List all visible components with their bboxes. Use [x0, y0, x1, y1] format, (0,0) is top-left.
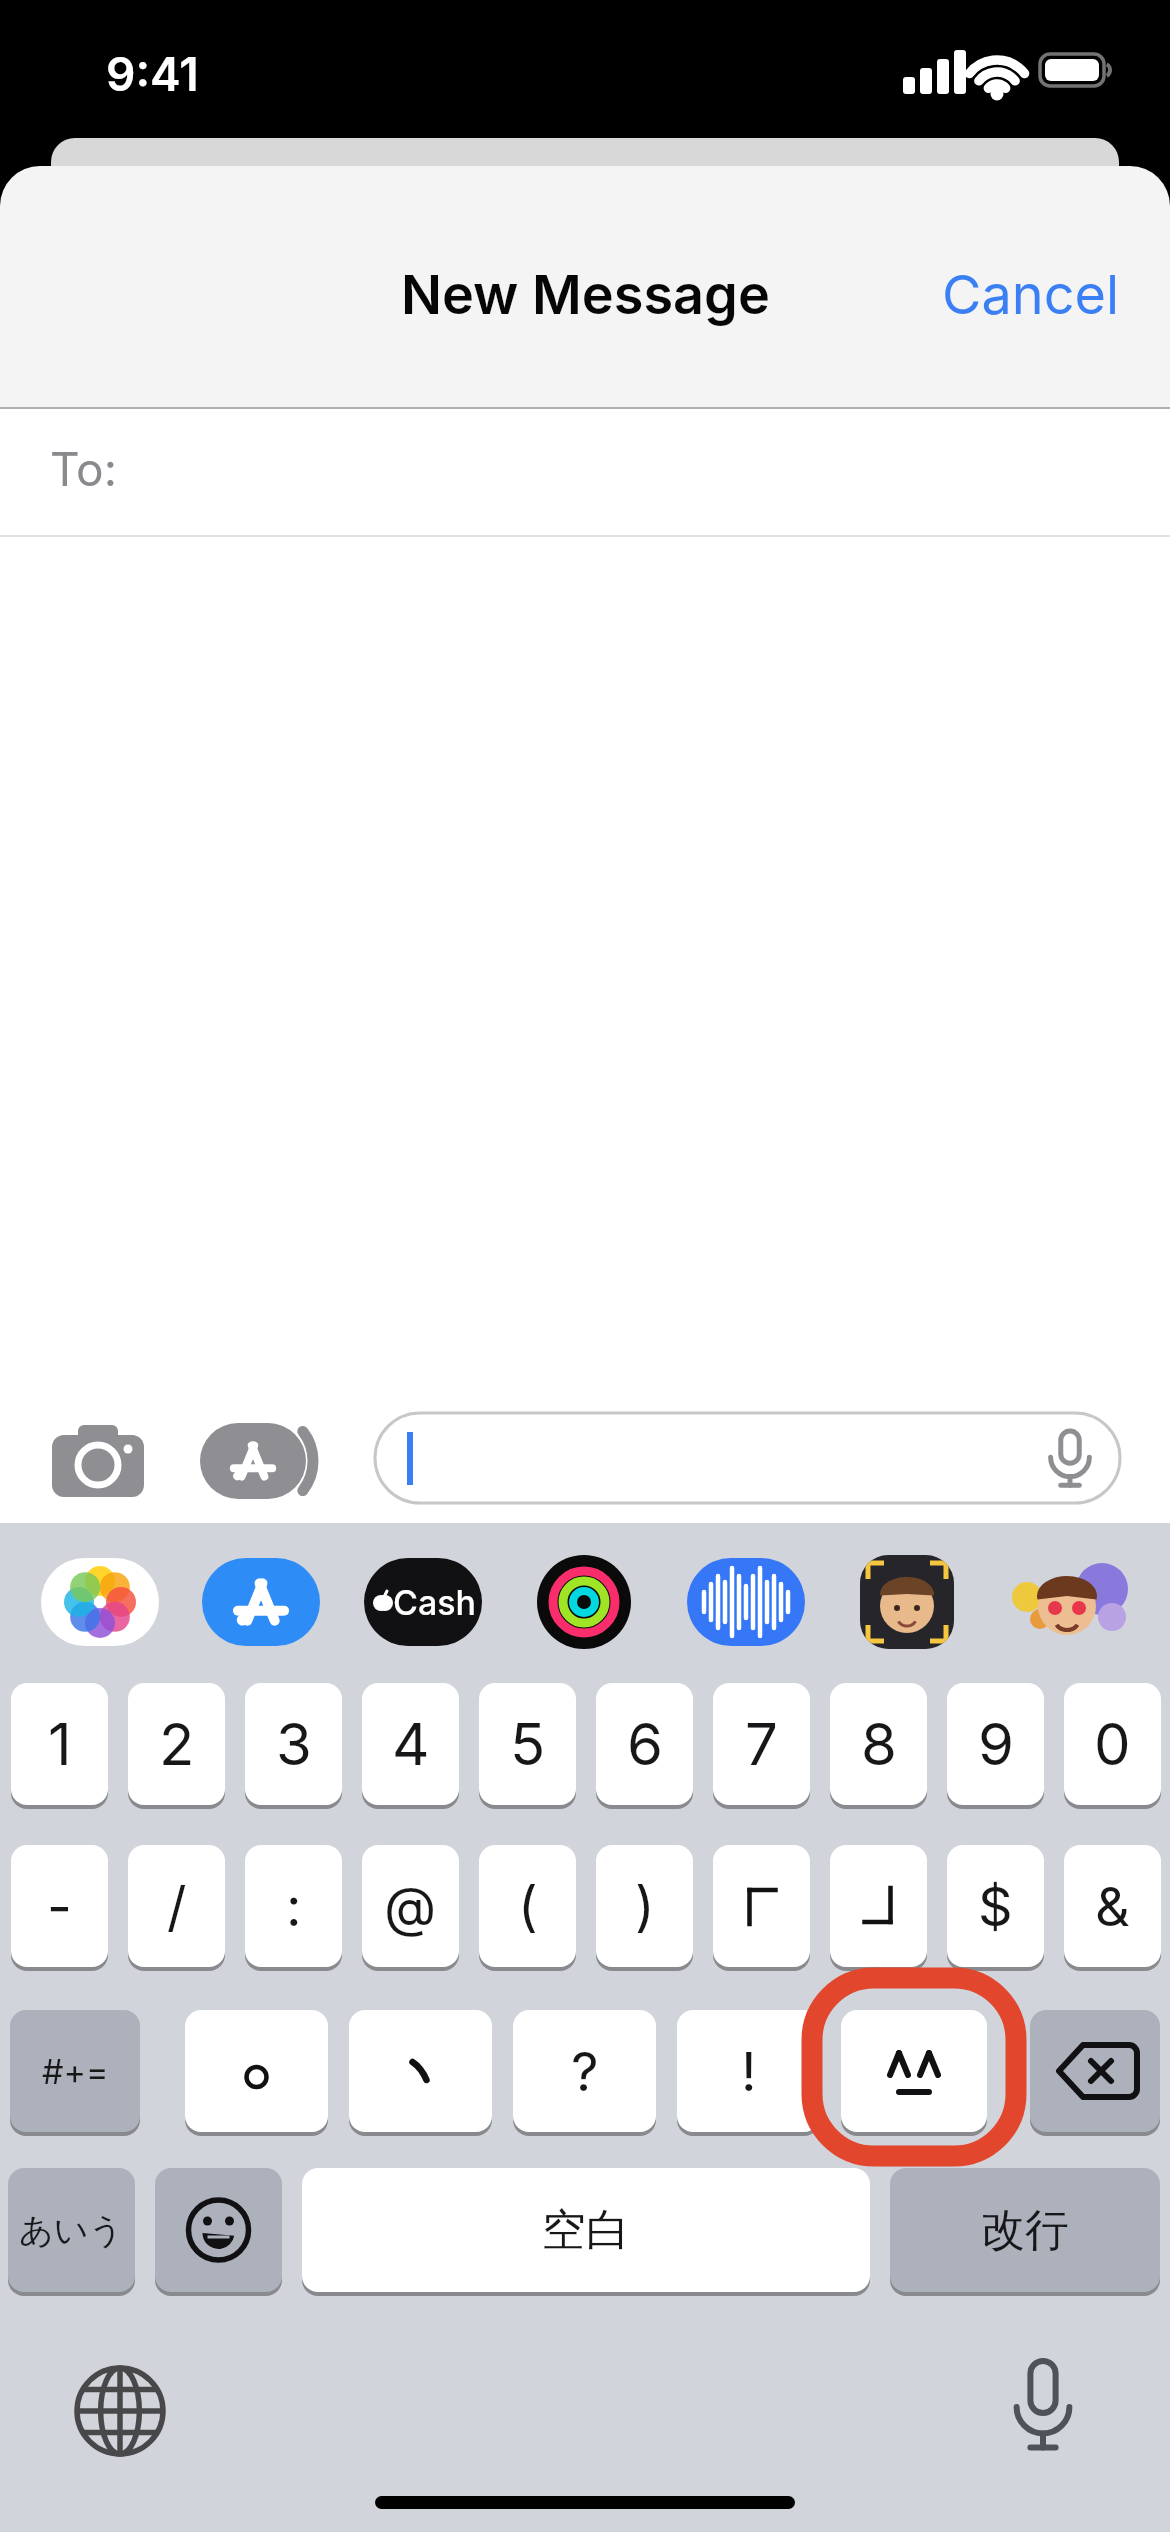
button[interactable]: To:	[0, 409, 1170, 535]
staticText: :	[286, 1874, 302, 1939]
button[interactable]	[155, 2168, 282, 2292]
staticText: New Message	[401, 262, 770, 327]
button[interactable]	[349, 2010, 492, 2132]
button[interactable]	[185, 2010, 328, 2132]
staticText: @	[384, 1874, 437, 1939]
button[interactable]	[830, 1845, 927, 1967]
button[interactable]: 6	[596, 1683, 693, 1805]
button[interactable]	[841, 2010, 987, 2132]
staticText: /	[167, 1874, 187, 1939]
staticText: Cancel	[942, 262, 1120, 327]
button[interactable]	[52, 1421, 148, 1501]
button[interactable]	[860, 1555, 954, 1649]
staticText: #+=	[42, 2051, 109, 2092]
button[interactable]	[1030, 2010, 1160, 2132]
staticText: 7	[745, 1709, 778, 1779]
staticText: Cash	[393, 1582, 477, 1623]
button[interactable]: あいう	[8, 2168, 135, 2292]
staticText: 改行	[981, 2203, 1069, 2258]
button[interactable]: #+=	[10, 2010, 140, 2132]
button[interactable]	[202, 1558, 320, 1646]
staticText: 8	[861, 1709, 897, 1779]
staticText: $	[978, 1874, 1013, 1939]
staticText: あいう	[19, 2209, 124, 2252]
button[interactable]: )	[596, 1845, 693, 1967]
button[interactable]: &	[1064, 1845, 1161, 1967]
staticText: !	[741, 2039, 757, 2104]
staticText: (	[518, 1874, 538, 1939]
button[interactable]: :	[245, 1845, 342, 1967]
staticText: 0	[1094, 1709, 1131, 1779]
staticText: -	[47, 1874, 72, 1939]
button[interactable]: @	[362, 1845, 459, 1967]
staticText: 4	[392, 1709, 430, 1779]
staticText: 9:41	[106, 46, 199, 102]
button[interactable]: Cash	[364, 1558, 482, 1646]
staticText: 空白	[542, 2203, 630, 2258]
button[interactable]	[375, 1413, 1120, 1503]
button[interactable]: 1	[11, 1683, 108, 1805]
staticText: )	[635, 1874, 655, 1939]
button[interactable]	[200, 1421, 340, 1501]
button[interactable]: 8	[830, 1683, 927, 1805]
button[interactable]: 0	[1064, 1683, 1161, 1805]
button[interactable]	[537, 1555, 631, 1649]
button[interactable]	[1010, 1555, 1128, 1649]
staticText: To:	[50, 441, 117, 497]
staticText: ?	[571, 2039, 599, 2104]
button[interactable]: !	[677, 2010, 820, 2132]
button[interactable]: 7	[713, 1683, 810, 1805]
button[interactable]: $	[947, 1845, 1044, 1967]
button[interactable]	[72, 2363, 168, 2459]
button[interactable]: 改行	[890, 2168, 1160, 2292]
button[interactable]: Cancel	[942, 246, 1120, 311]
button[interactable]: -	[11, 1845, 108, 1967]
button[interactable]: 空白	[302, 2168, 870, 2292]
button[interactable]: (	[479, 1845, 576, 1967]
staticText: &	[1095, 1874, 1130, 1939]
button[interactable]: 3	[245, 1683, 342, 1805]
staticText: 2	[159, 1709, 195, 1779]
button[interactable]	[41, 1558, 159, 1646]
staticText: 6	[627, 1709, 663, 1779]
staticText: 5	[510, 1709, 546, 1779]
button[interactable]: /	[128, 1845, 225, 1967]
button[interactable]	[713, 1845, 810, 1967]
button[interactable]	[687, 1558, 805, 1646]
staticText: 1	[48, 1709, 72, 1779]
button[interactable]: 2	[128, 1683, 225, 1805]
button[interactable]	[1013, 2357, 1073, 2457]
staticText: 9	[978, 1709, 1014, 1779]
staticText: 3	[276, 1709, 312, 1779]
button[interactable]: 5	[479, 1683, 576, 1805]
button[interactable]: 9	[947, 1683, 1044, 1805]
button[interactable]: ?	[513, 2010, 656, 2132]
button[interactable]: 4	[362, 1683, 459, 1805]
